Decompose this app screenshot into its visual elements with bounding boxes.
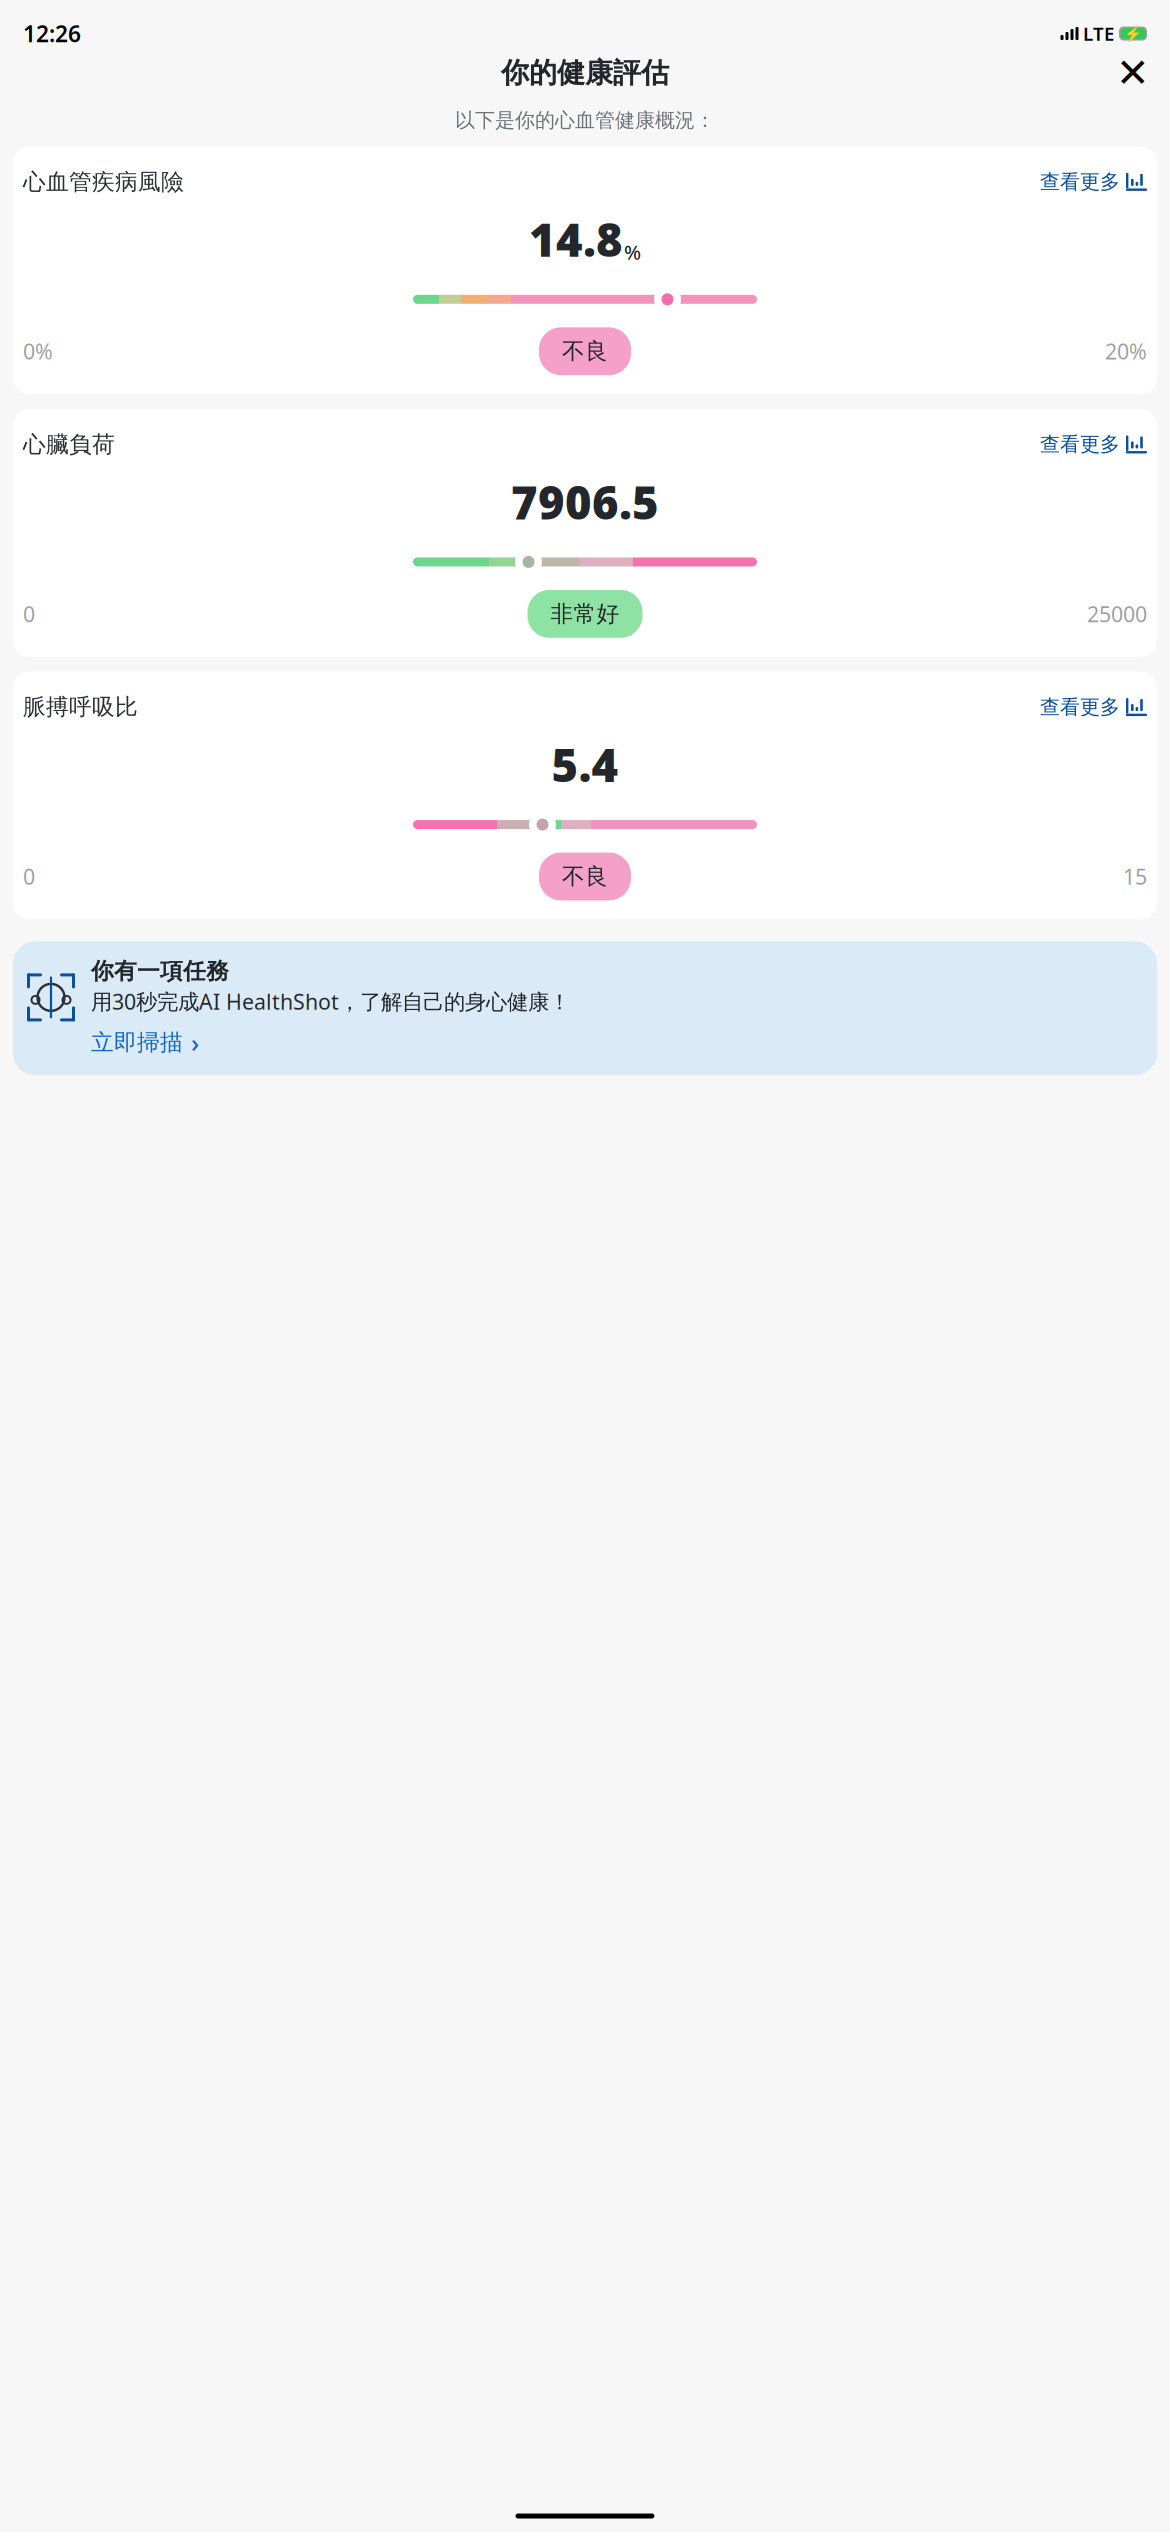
staticText: 查看更多 <box>1040 432 1120 457</box>
staticText: 7906.5 <box>511 472 659 532</box>
staticText: 0% <box>23 337 53 365</box>
button[interactable]: 查看更多 <box>1040 691 1147 723</box>
staticText: 立即掃描 <box>91 1028 183 1056</box>
staticText: 你有一項任務 <box>91 957 229 985</box>
staticText: LTE <box>1083 21 1114 46</box>
button[interactable]: 查看更多 <box>1040 428 1147 461</box>
staticText: 查看更多 <box>1040 695 1120 719</box>
staticText: 15 <box>1123 862 1147 891</box>
staticText: 25000 <box>1087 600 1147 628</box>
staticText: 你的健康評估 <box>501 56 669 90</box>
staticText: 20% <box>1105 337 1147 365</box>
staticText: 脈搏呼吸比 <box>23 693 138 721</box>
staticText: 不良 <box>562 862 608 890</box>
staticText: 5.4 <box>551 734 618 794</box>
staticText: 心血管疾病風險 <box>23 168 184 196</box>
staticText: 非常好 <box>550 600 619 628</box>
staticText: 以下是你的心血管健康概況： <box>455 108 715 133</box>
staticText: 0 <box>23 600 35 628</box>
staticText: 12:26 <box>23 18 81 48</box>
staticText: ⚡ <box>1124 25 1142 42</box>
staticText: ✕ <box>1116 50 1150 96</box>
button[interactable]: 你有一項任務 <box>13 941 1157 1075</box>
staticText: 0 <box>23 862 35 891</box>
staticText: 14.8 <box>529 209 623 269</box>
staticText: % <box>624 239 641 265</box>
staticText: 不良 <box>562 337 608 365</box>
staticText: › <box>191 1026 199 1059</box>
button[interactable]: 查看更多 <box>1040 166 1147 198</box>
staticText: 用30秒完成AI HealthShot，了解自己的身心健康！ <box>91 987 570 1015</box>
staticText: 查看更多 <box>1040 170 1120 194</box>
button[interactable]: Close <box>1110 50 1156 96</box>
staticText: 心臟負荷 <box>23 430 115 458</box>
